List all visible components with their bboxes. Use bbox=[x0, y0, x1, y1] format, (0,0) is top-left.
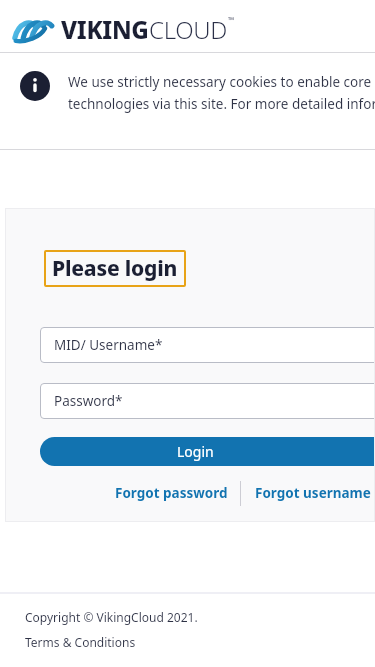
button[interactable]: Forgot username bbox=[255, 480, 371, 506]
staticText: Forgot password bbox=[115, 484, 228, 502]
staticText: technologies via this site. For more det… bbox=[68, 95, 375, 113]
staticText: Please login bbox=[52, 254, 178, 283]
button[interactable]: Login bbox=[40, 437, 375, 466]
other: Information bbox=[20, 71, 50, 101]
staticText: Terms & Conditions bbox=[25, 634, 136, 650]
staticText: Forgot username bbox=[255, 484, 371, 502]
button[interactable]: Forgot password bbox=[115, 480, 228, 506]
staticText: We use strictly necessary cookies to ena… bbox=[68, 73, 375, 91]
staticText: CLOUD bbox=[149, 13, 228, 46]
staticText: ™ bbox=[228, 14, 235, 25]
button[interactable]: VikingCloud home bbox=[14, 13, 235, 46]
button[interactable]: Password* bbox=[40, 383, 375, 419]
button[interactable]: Terms & Conditions bbox=[25, 634, 136, 650]
staticText: Password* bbox=[54, 392, 123, 410]
staticText: VIKING bbox=[61, 13, 149, 46]
staticText: Copyright © VikingCloud 2021. bbox=[25, 609, 198, 625]
staticText: Login bbox=[177, 442, 214, 461]
staticText: MID/ Username* bbox=[54, 336, 163, 354]
button[interactable]: MID/ Username* bbox=[40, 327, 375, 363]
